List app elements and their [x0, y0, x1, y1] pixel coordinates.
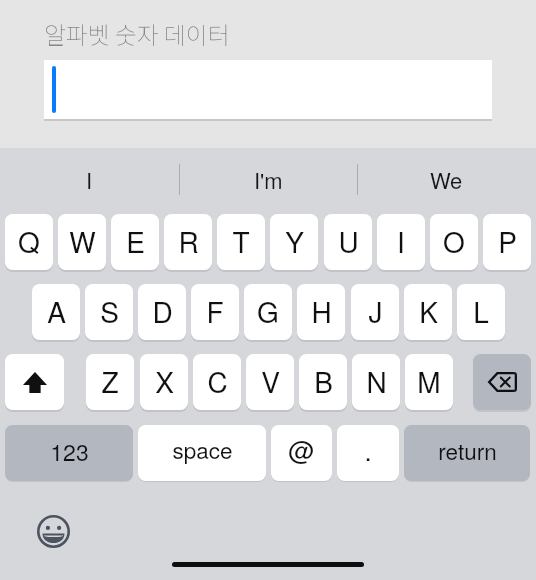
button[interactable]: @: [271, 425, 332, 481]
button[interactable]: D: [138, 284, 186, 340]
button[interactable]: [44, 60, 492, 119]
button[interactable]: V: [246, 354, 294, 410]
staticText: H: [311, 291, 332, 331]
button[interactable]: M: [405, 354, 453, 410]
button[interactable]: Backspace: [473, 354, 531, 410]
staticText: G: [257, 291, 279, 331]
staticText: E: [126, 221, 145, 261]
staticText: I'm: [254, 164, 283, 196]
button[interactable]: Q: [5, 214, 53, 270]
staticText: B: [314, 361, 333, 401]
staticText: .: [364, 431, 372, 468]
button[interactable]: G: [244, 284, 292, 340]
staticText: X: [155, 361, 174, 401]
staticText: I: [86, 164, 93, 196]
button[interactable]: Emoji keyboard: [31, 509, 75, 553]
button[interactable]: .: [337, 425, 399, 481]
button[interactable]: L: [457, 284, 505, 340]
staticText: T: [232, 221, 250, 261]
staticText: U: [338, 221, 359, 261]
staticText: return: [438, 434, 497, 466]
staticText: 123: [50, 435, 89, 468]
staticText: space: [172, 433, 233, 465]
button[interactable]: C: [193, 354, 241, 410]
staticText: J: [368, 291, 383, 331]
button[interactable]: T: [217, 214, 265, 270]
staticText: A: [47, 291, 66, 331]
button[interactable]: W: [58, 214, 106, 270]
staticText: We: [430, 164, 463, 196]
staticText: K: [419, 291, 438, 331]
staticText: P: [498, 221, 517, 261]
button[interactable]: J: [351, 284, 399, 340]
button[interactable]: F: [191, 284, 239, 340]
button[interactable]: 123: [5, 425, 133, 481]
button[interactable]: A: [32, 284, 80, 340]
button[interactable]: Z: [86, 354, 134, 410]
button[interactable]: I: [0, 149, 179, 210]
staticText: F: [206, 291, 224, 331]
button[interactable]: R: [164, 214, 212, 270]
staticText: R: [178, 221, 199, 261]
button[interactable]: Y: [270, 214, 318, 270]
button[interactable]: return: [404, 425, 530, 481]
staticText: C: [207, 361, 228, 401]
staticText: S: [100, 291, 119, 331]
staticText: D: [152, 291, 173, 331]
button[interactable]: B: [299, 354, 347, 410]
staticText: V: [261, 361, 280, 401]
staticText: I: [397, 221, 405, 261]
staticText: M: [417, 361, 441, 401]
button[interactable]: U: [324, 214, 372, 270]
staticText: N: [366, 361, 387, 401]
staticText: Q: [18, 221, 40, 261]
button[interactable]: E: [111, 214, 159, 270]
button[interactable]: Shift: [5, 354, 64, 410]
button[interactable]: We: [357, 149, 536, 210]
button[interactable]: H: [297, 284, 345, 340]
button[interactable]: K: [404, 284, 452, 340]
button[interactable]: O: [430, 214, 478, 270]
button[interactable]: space: [138, 425, 266, 481]
staticText: L: [473, 291, 489, 331]
staticText: Y: [285, 221, 304, 261]
staticText: Z: [101, 361, 119, 401]
button[interactable]: I'm: [179, 149, 358, 210]
button[interactable]: X: [140, 354, 188, 410]
button[interactable]: P: [483, 214, 531, 270]
staticText: @: [288, 430, 315, 467]
button[interactable]: S: [85, 284, 133, 340]
staticText: 알파벳 숫자 데이터: [44, 16, 230, 50]
button[interactable]: I: [377, 214, 425, 270]
staticText: W: [69, 221, 96, 261]
button[interactable]: N: [352, 354, 400, 410]
staticText: O: [443, 221, 465, 261]
